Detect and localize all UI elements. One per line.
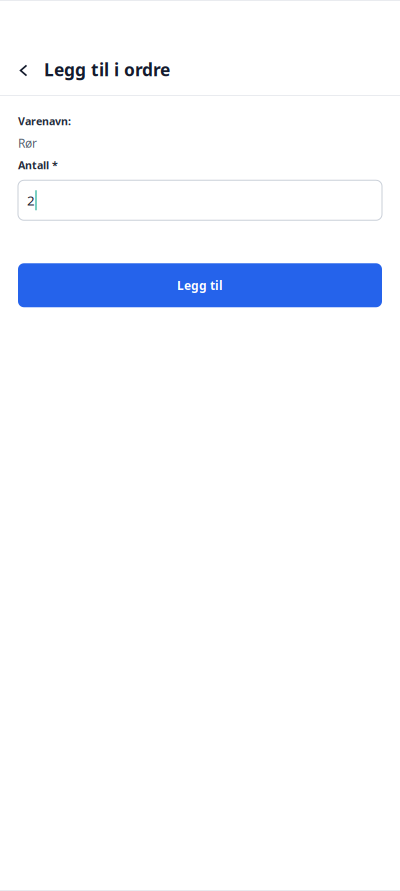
- staticText: Rør: [18, 135, 37, 151]
- button[interactable]: Legg til: [18, 263, 382, 307]
- staticText: Legg til i ordre: [44, 58, 170, 81]
- staticText: Antall *: [18, 158, 58, 172]
- staticText: Legg til: [177, 277, 223, 293]
- button[interactable]: 2: [18, 180, 382, 220]
- button[interactable]: Back: [10, 53, 37, 87]
- staticText: 2: [27, 191, 35, 209]
- staticText: Varenavn:: [18, 114, 71, 128]
